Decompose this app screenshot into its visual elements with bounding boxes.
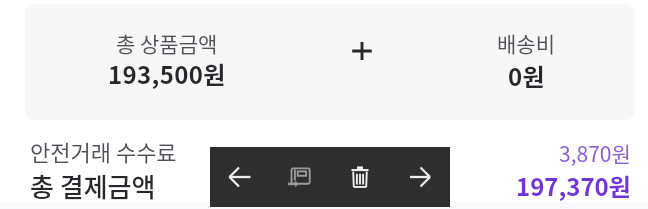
button[interactable]: Back: [210, 147, 270, 207]
staticText: 197,370원: [516, 168, 631, 203]
staticText: 193,500원: [108, 56, 226, 90]
button[interactable]: Delete: [330, 147, 390, 207]
staticText: 3,870원: [559, 138, 631, 168]
staticText: 안전거래 수수료: [30, 135, 177, 167]
button[interactable]: Switch keyboard: [270, 147, 330, 207]
staticText: 0원: [508, 58, 545, 92]
staticText: 총 결제금액: [30, 167, 156, 205]
button[interactable]: Forward: [390, 147, 450, 207]
staticText: 총 상품금액: [116, 28, 218, 58]
staticText: 배송비: [497, 28, 555, 58]
